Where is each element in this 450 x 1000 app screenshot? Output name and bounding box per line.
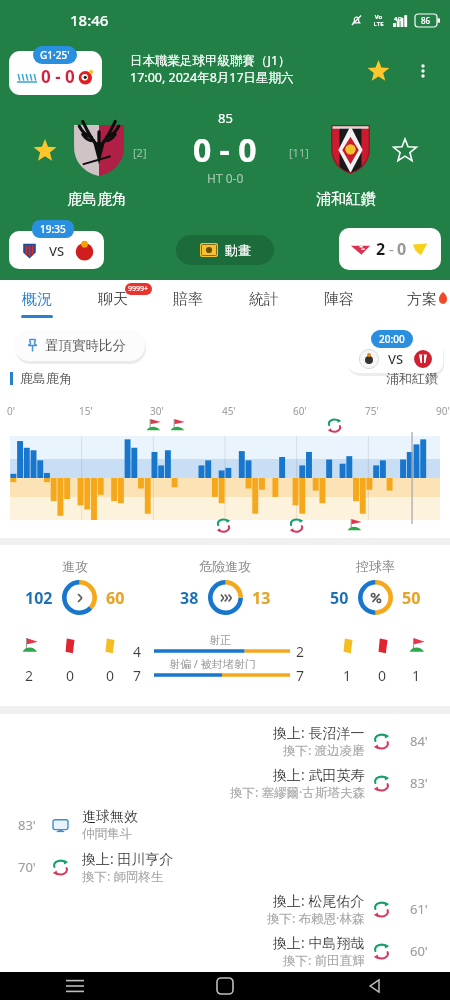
staticText: 1: [343, 666, 352, 685]
staticText: 60': [410, 942, 428, 960]
button[interactable]: VS: [9, 231, 104, 269]
staticText: 換下: 師岡柊生: [82, 868, 164, 885]
button[interactable]: VS: [348, 340, 443, 373]
staticText: [11]: [289, 145, 309, 160]
button[interactable]: Back: [300, 972, 450, 1000]
staticText: 4G: [394, 15, 402, 23]
staticText: Vo LTE: [373, 13, 384, 28]
staticText: G1·25': [40, 48, 70, 62]
staticText: 17:00, 2024年8月17日星期六: [130, 69, 294, 86]
button[interactable]: 置頂實時比分: [14, 330, 145, 361]
staticText: 38: [180, 587, 199, 609]
button[interactable]: 換上: 中島翔哉: [0, 930, 450, 972]
staticText: 13: [252, 587, 271, 609]
staticText: 70': [18, 858, 36, 876]
staticText: 2: [25, 666, 34, 685]
staticText: 7: [296, 666, 305, 685]
staticText: 50: [330, 587, 349, 609]
staticText: 動畫: [225, 242, 251, 258]
staticText: 18:46: [70, 10, 109, 30]
button[interactable]: 換上: 武田英寿: [0, 762, 450, 804]
staticText: 聊天: [98, 290, 128, 309]
button[interactable]: 聊天: [87, 280, 139, 322]
staticText: 30': [150, 404, 164, 418]
staticText: 0: [378, 666, 387, 685]
button[interactable]: Recents: [0, 972, 150, 1000]
button[interactable]: 70': [0, 846, 450, 888]
button[interactable]: 方案: [396, 280, 448, 322]
staticText: 61': [410, 900, 428, 918]
staticText: 換上: 中島翔哉: [273, 933, 365, 952]
button[interactable]: 換上: 松尾佑介: [0, 888, 450, 930]
button[interactable]: Favourite home team: [32, 138, 58, 164]
button[interactable]: More options: [405, 53, 441, 89]
staticText: 15': [79, 404, 93, 418]
staticText: 仲間隼斗: [82, 826, 132, 842]
button[interactable]: 動畫: [176, 235, 274, 265]
staticText: HT 0-0: [207, 170, 244, 186]
staticText: VS: [388, 350, 404, 368]
staticText: 20:00: [379, 332, 405, 346]
staticText: 0': [7, 404, 15, 418]
staticText: 9999+: [128, 284, 149, 294]
staticText: 83': [18, 816, 36, 834]
staticText: 0 - 0: [193, 128, 257, 172]
staticText: 陣容: [324, 290, 354, 309]
staticText: 85: [218, 109, 233, 127]
button[interactable]: 2: [339, 228, 441, 270]
staticText: 鹿島鹿角: [67, 190, 127, 209]
button[interactable]: Home: [150, 972, 300, 1000]
staticText: 危險進攻: [199, 558, 251, 574]
staticText: 置頂實時比分: [45, 337, 126, 354]
staticText: 浦和紅鑽: [316, 190, 376, 209]
staticText: 86: [421, 15, 431, 26]
staticText: 統計: [249, 290, 279, 309]
button[interactable]: Favourite away team: [392, 138, 418, 164]
staticText: 19:35: [40, 222, 66, 236]
staticText: 浦和紅鑽: [386, 370, 438, 386]
button[interactable]: Favourite: [360, 53, 396, 89]
staticText: 50: [402, 587, 421, 609]
staticText: 鹿島鹿角: [20, 370, 72, 386]
staticText: 日本職業足球甲級聯賽（J1）: [130, 52, 291, 69]
staticText: 換上: 松尾佑介: [273, 891, 365, 910]
staticText: 60': [293, 404, 307, 418]
staticText: 2: [296, 642, 305, 661]
staticText: 換下: 渡边凌磨: [283, 742, 365, 759]
staticText: 賠率: [173, 290, 203, 309]
staticText: 換上: 長沼洋一: [273, 723, 365, 742]
staticText: 0: [397, 238, 407, 260]
button[interactable]: 83': [0, 804, 450, 846]
staticText: 1: [412, 666, 421, 685]
staticText: 換上: 武田英寿: [273, 765, 365, 784]
staticText: 方案: [407, 290, 437, 309]
staticText: 進球無效: [82, 808, 138, 826]
staticText: 換下: 前田直輝: [283, 952, 365, 969]
staticText: 90': [436, 404, 450, 418]
staticText: 換下: 塞繆爾·古斯塔夫森: [230, 784, 365, 801]
button[interactable]: 換上: 長沼洋一: [0, 720, 450, 762]
staticText: 0: [106, 666, 115, 685]
staticText: 控球率: [356, 558, 395, 574]
staticText: 換下: 布赖恩·林森: [267, 910, 365, 927]
staticText: -: [389, 239, 394, 259]
staticText: 換上: 田川亨介: [82, 849, 174, 868]
staticText: 進攻: [62, 558, 88, 574]
staticText: 概況: [22, 290, 52, 309]
button[interactable]: 賠率: [162, 280, 214, 322]
button[interactable]: 0 - 0: [9, 51, 102, 95]
button[interactable]: 統計: [238, 280, 290, 322]
staticText: 45': [222, 404, 236, 418]
staticText: 75': [365, 404, 379, 418]
staticText: 102: [25, 587, 53, 609]
staticText: 0: [66, 666, 75, 685]
staticText: [2]: [133, 145, 147, 160]
staticText: 60: [106, 587, 125, 609]
staticText: 射偏 / 被封堵射门: [169, 656, 256, 671]
staticText: 射正: [209, 633, 231, 647]
button[interactable]: 陣容: [313, 280, 365, 322]
staticText: 2: [376, 238, 386, 260]
button[interactable]: 概況: [11, 280, 63, 322]
staticText: 0 - 0: [41, 65, 75, 88]
staticText: 83': [410, 774, 428, 792]
